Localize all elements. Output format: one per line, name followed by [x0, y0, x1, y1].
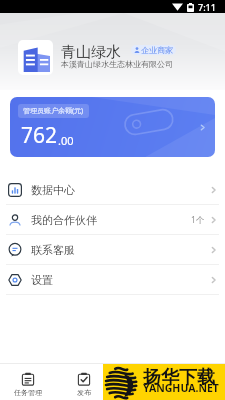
- staticText: 设置: [31, 273, 53, 287]
- staticText: 762: [21, 121, 58, 150]
- button[interactable]: 任务管理: [0, 364, 56, 400]
- staticText: .00: [58, 133, 74, 148]
- staticText: 青山绿水: [61, 43, 121, 62]
- staticText: 企业商家: [141, 45, 173, 55]
- button[interactable]: 我的合作伙伴: [0, 205, 225, 235]
- staticText: 管理员账户余额(元): [23, 106, 84, 116]
- staticText: 本溪青山绿水生态林业有限公司: [61, 59, 173, 69]
- button[interactable]: 联系客服: [0, 235, 225, 265]
- staticText: 发布: [77, 388, 91, 397]
- staticText: 1个: [191, 214, 205, 226]
- button[interactable]: 设置: [0, 265, 225, 295]
- staticText: 任务管理: [14, 388, 42, 397]
- button[interactable]: 发布: [56, 364, 112, 400]
- staticText: 联系客服: [31, 243, 75, 257]
- staticText: YANGHUA.NET: [143, 381, 219, 395]
- staticText: 我的合作伙伴: [31, 213, 97, 227]
- staticText: 扬华下载: [143, 366, 215, 389]
- button[interactable]: 管理员账户余额(元): [10, 97, 215, 157]
- staticText: 数据中心: [31, 183, 75, 197]
- button[interactable]: 数据中心: [0, 175, 225, 205]
- staticText: 7:11: [198, 1, 216, 13]
